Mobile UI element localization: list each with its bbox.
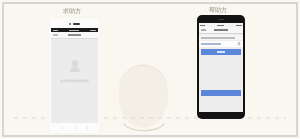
staticText: 语音呼叫失败请重试 [60,79,89,83]
button[interactable]: Contacts [199,41,243,47]
staticText: 求助方 [63,7,81,15]
button[interactable]: Back [197,15,245,119]
other: Contacts [237,42,241,46]
button[interactable]: Back [50,19,99,133]
staticText: 帮助方 [209,6,227,14]
button[interactable] [201,49,241,55]
